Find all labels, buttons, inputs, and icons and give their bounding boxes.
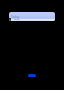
staticText: Today [11, 15, 20, 19]
button[interactable]: Today [9, 12, 55, 21]
staticText: mm [14, 18, 20, 20]
button[interactable]: Continue [28, 74, 36, 77]
